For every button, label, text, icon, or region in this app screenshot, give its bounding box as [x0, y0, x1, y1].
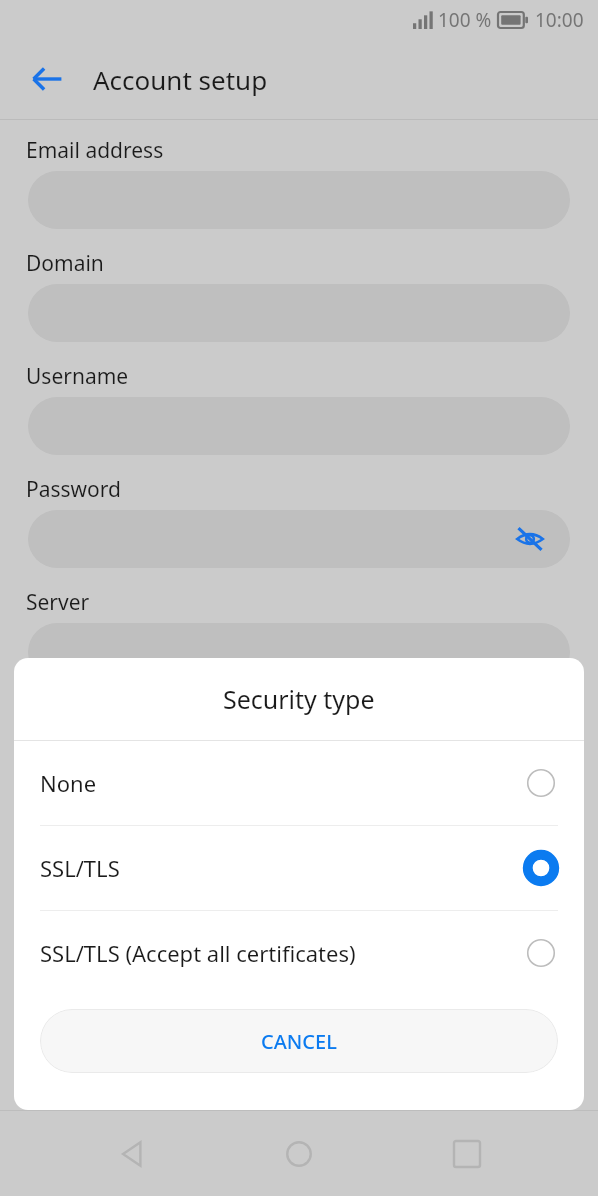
button[interactable]: [28, 623, 570, 681]
staticText: None: [40, 768, 97, 798]
button[interactable]: Show password: [510, 519, 550, 559]
button[interactable]: None: [14, 741, 584, 825]
staticText: Domain: [26, 249, 104, 278]
staticText: Username: [26, 362, 129, 391]
staticText: Server: [26, 588, 90, 617]
staticText: Account setup: [93, 62, 268, 97]
staticText: Email address: [26, 136, 164, 165]
staticText: CANCEL: [261, 1028, 337, 1055]
button[interactable]: CANCEL: [40, 1009, 558, 1073]
button[interactable]: Show password: [28, 510, 570, 568]
button[interactable]: SSL/TLS (Accept all certificates): [14, 911, 584, 995]
staticText: SSL/TLS (Accept all certificates): [40, 938, 356, 968]
button[interactable]: Back: [18, 50, 76, 108]
staticText: 100 %: [438, 7, 492, 33]
button[interactable]: Recents: [431, 1118, 503, 1190]
staticText: Password: [26, 475, 121, 504]
staticText: 10:00: [535, 7, 584, 33]
button[interactable]: Home: [263, 1118, 335, 1190]
button[interactable]: SSL/TLS: [14, 826, 584, 910]
staticText: SSL/TLS: [40, 853, 120, 883]
button[interactable]: Back: [96, 1118, 168, 1190]
staticText: Security type: [223, 682, 375, 716]
